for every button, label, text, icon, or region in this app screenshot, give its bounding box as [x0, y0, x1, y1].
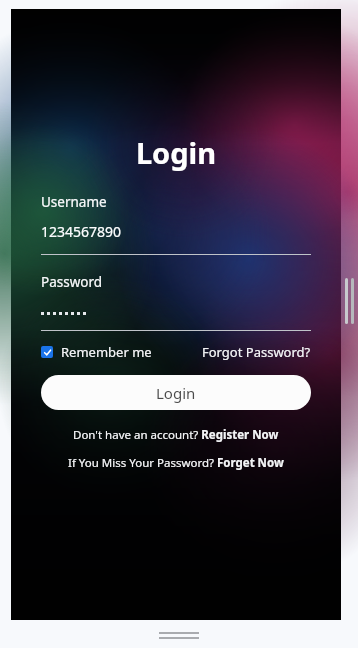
staticText: Login — [156, 383, 196, 403]
staticText: Username — [41, 193, 107, 211]
button[interactable]: Username — [41, 193, 311, 255]
staticText: Don't have an account? Register Now — [73, 427, 279, 443]
staticText: Forgot Password? — [202, 343, 311, 361]
staticText: Login — [41, 133, 311, 172]
staticText: 1234567890 — [41, 222, 122, 241]
button[interactable]: Don't have an account? Register Now — [41, 427, 311, 443]
button[interactable]: Login — [41, 375, 311, 410]
button[interactable]: Forgot Password? — [202, 343, 311, 361]
button[interactable]: Remember me — [41, 343, 152, 361]
staticText: Password — [41, 273, 103, 291]
staticText: Remember me — [61, 343, 152, 361]
button[interactable]: If You Miss Your Password? Forget Now — [41, 455, 311, 471]
button[interactable]: Password — [41, 273, 311, 331]
staticText: If You Miss Your Password? Forget Now — [68, 455, 284, 471]
